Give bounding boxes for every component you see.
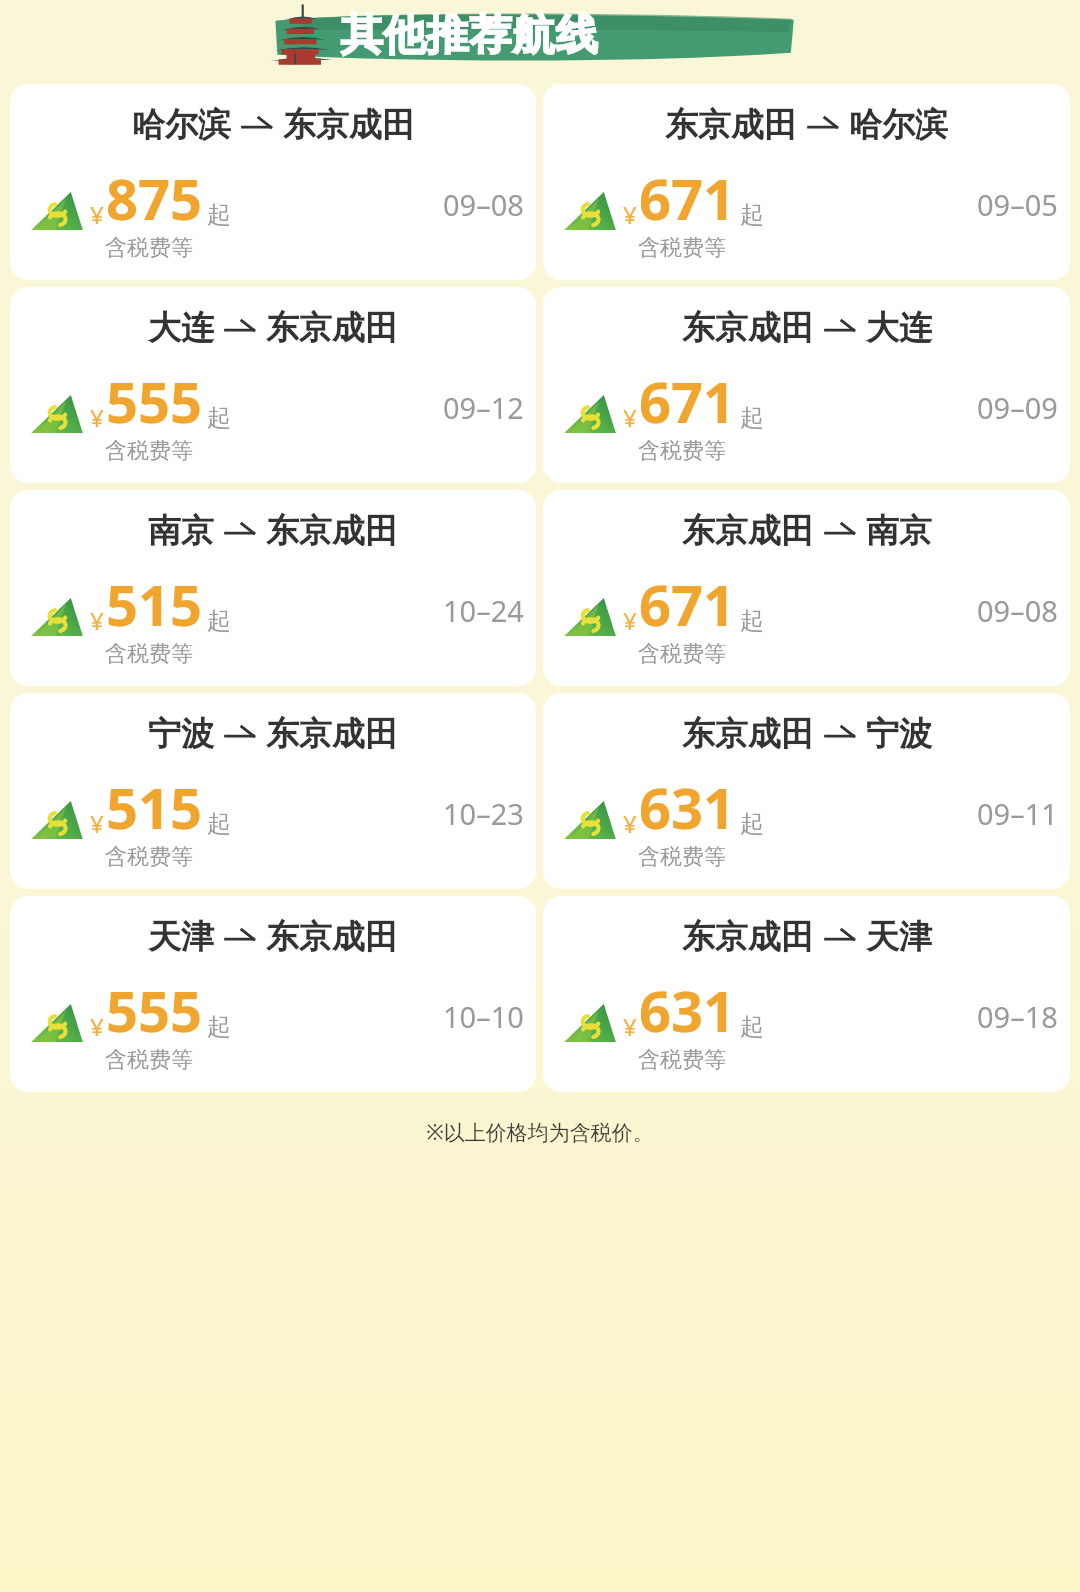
staticText: 起 bbox=[740, 809, 764, 839]
staticText: 起 bbox=[740, 200, 764, 230]
staticText: 09–11 bbox=[977, 794, 1058, 833]
staticText: 含税费等 bbox=[105, 234, 193, 262]
staticText: 10–10 bbox=[443, 997, 524, 1036]
button[interactable]: 哈尔滨 bbox=[10, 84, 536, 280]
staticText: 起 bbox=[740, 606, 764, 636]
staticText: 含税费等 bbox=[105, 1046, 193, 1074]
staticText: 东京成田 bbox=[682, 916, 814, 958]
staticText: 515 bbox=[106, 769, 203, 845]
other: Spring Airlines bbox=[24, 187, 84, 237]
staticText: 东京成田 bbox=[283, 104, 415, 146]
staticText: 含税费等 bbox=[638, 640, 726, 668]
staticText: ¥ bbox=[90, 1010, 104, 1043]
staticText: 东京成田 bbox=[266, 713, 398, 755]
other: Spring Airlines bbox=[24, 390, 84, 440]
staticText: 东京成田 bbox=[682, 510, 814, 552]
staticText: 含税费等 bbox=[638, 843, 726, 871]
other: Spring Airlines bbox=[24, 999, 84, 1049]
staticText: 10–24 bbox=[443, 591, 524, 630]
staticText: 含税费等 bbox=[638, 234, 726, 262]
staticText: 南京 bbox=[148, 510, 214, 552]
staticText: 起 bbox=[740, 403, 764, 433]
other: Spring Airlines bbox=[557, 796, 617, 846]
staticText: 515 bbox=[106, 566, 203, 642]
staticText: 天津 bbox=[148, 916, 214, 958]
other: Spring Airlines bbox=[557, 593, 617, 643]
staticText: 起 bbox=[207, 606, 231, 636]
other: Spring Airlines bbox=[557, 187, 617, 237]
staticText: 天津 bbox=[866, 916, 932, 958]
staticText: 南京 bbox=[866, 510, 932, 552]
other: Pagoda bbox=[268, 4, 330, 66]
staticText: 671 bbox=[639, 566, 736, 642]
staticText: 555 bbox=[106, 972, 203, 1048]
button[interactable]: 东京成田 bbox=[543, 490, 1070, 686]
button[interactable]: 东京成田 bbox=[543, 896, 1070, 1092]
staticText: 10–23 bbox=[443, 794, 524, 833]
staticText: ※以上价格均为含税价。 bbox=[0, 1118, 1080, 1147]
staticText: 含税费等 bbox=[638, 1046, 726, 1074]
staticText: 哈尔滨 bbox=[132, 104, 231, 146]
other: Spring Airlines bbox=[24, 593, 84, 643]
staticText: 起 bbox=[207, 200, 231, 230]
staticText: ¥ bbox=[623, 807, 637, 840]
staticText: 09–18 bbox=[977, 997, 1058, 1036]
staticText: 875 bbox=[106, 160, 203, 236]
staticText: 哈尔滨 bbox=[849, 104, 948, 146]
staticText: 631 bbox=[639, 769, 736, 845]
staticText: 671 bbox=[639, 363, 736, 439]
staticText: 东京成田 bbox=[665, 104, 797, 146]
staticText: 含税费等 bbox=[638, 437, 726, 465]
staticText: 大连 bbox=[148, 307, 214, 349]
staticText: ¥ bbox=[90, 807, 104, 840]
staticText: 631 bbox=[639, 972, 736, 1048]
staticText: 09–05 bbox=[977, 185, 1058, 224]
staticText: 起 bbox=[740, 1012, 764, 1042]
staticText: ¥ bbox=[90, 604, 104, 637]
staticText: ¥ bbox=[623, 604, 637, 637]
button[interactable]: 宁波 bbox=[10, 693, 536, 889]
staticText: ¥ bbox=[90, 401, 104, 434]
staticText: 671 bbox=[639, 160, 736, 236]
staticText: 含税费等 bbox=[105, 843, 193, 871]
staticText: 含税费等 bbox=[105, 437, 193, 465]
button[interactable]: 大连 bbox=[10, 287, 536, 483]
button[interactable]: 天津 bbox=[10, 896, 536, 1092]
staticText: 东京成田 bbox=[682, 713, 814, 755]
staticText: 东京成田 bbox=[682, 307, 814, 349]
staticText: 宁波 bbox=[866, 713, 932, 755]
staticText: 宁波 bbox=[148, 713, 214, 755]
staticText: 09–09 bbox=[977, 388, 1058, 427]
staticText: 09–12 bbox=[443, 388, 524, 427]
staticText: 东京成田 bbox=[266, 510, 398, 552]
button[interactable]: 东京成田 bbox=[543, 287, 1070, 483]
button[interactable]: 东京成田 bbox=[543, 693, 1070, 889]
other: Spring Airlines bbox=[557, 999, 617, 1049]
staticText: 起 bbox=[207, 809, 231, 839]
staticText: 含税费等 bbox=[105, 640, 193, 668]
staticText: 大连 bbox=[866, 307, 932, 349]
other: Spring Airlines bbox=[24, 796, 84, 846]
staticText: 09–08 bbox=[977, 591, 1058, 630]
button[interactable]: 南京 bbox=[10, 490, 536, 686]
staticText: 09–08 bbox=[443, 185, 524, 224]
staticText: 起 bbox=[207, 1012, 231, 1042]
staticText: 东京成田 bbox=[266, 307, 398, 349]
staticText: 起 bbox=[207, 403, 231, 433]
staticText: ¥ bbox=[623, 198, 637, 231]
staticText: 其他推荐航线 bbox=[340, 9, 598, 62]
staticText: ¥ bbox=[623, 1010, 637, 1043]
staticText: 东京成田 bbox=[266, 916, 398, 958]
staticText: ¥ bbox=[90, 198, 104, 231]
staticText: 555 bbox=[106, 363, 203, 439]
button[interactable]: 东京成田 bbox=[543, 84, 1070, 280]
staticText: ¥ bbox=[623, 401, 637, 434]
other: Spring Airlines bbox=[557, 390, 617, 440]
